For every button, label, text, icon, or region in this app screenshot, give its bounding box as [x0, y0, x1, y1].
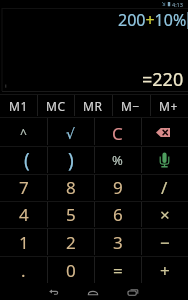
staticText: ^ — [20, 125, 27, 141]
staticText: 6 — [113, 203, 123, 226]
staticText: MC — [46, 98, 66, 114]
button[interactable]: ( — [0, 146, 47, 174]
button[interactable]: Home — [73, 284, 112, 300]
button[interactable]: % — [94, 146, 141, 174]
staticText: M− — [121, 98, 141, 114]
button[interactable]: 9 — [94, 174, 141, 201]
button[interactable]: √ — [47, 117, 94, 146]
button[interactable]: 1 — [0, 228, 47, 256]
button[interactable]: MC — [37, 94, 74, 117]
staticText: ) — [68, 147, 74, 173]
button[interactable]: × — [141, 201, 188, 228]
staticText: =220 — [142, 67, 184, 92]
staticText: 5 — [66, 203, 76, 226]
staticText: 1 — [19, 231, 29, 254]
staticText: % — [112, 151, 123, 169]
staticText: 9 — [113, 176, 123, 199]
staticText: C — [112, 122, 123, 145]
button[interactable]: 6 — [94, 201, 141, 228]
staticText: MR — [83, 98, 103, 114]
button[interactable]: 8 — [47, 174, 94, 201]
staticText: 2 — [66, 231, 76, 254]
staticText: = — [113, 259, 123, 282]
button[interactable]: MR — [74, 94, 112, 117]
button[interactable]: . — [0, 256, 47, 284]
button[interactable]: M1 — [0, 94, 37, 117]
staticText: 7 — [19, 176, 29, 199]
button[interactable]: M− — [112, 94, 150, 117]
button[interactable]: Backspace — [141, 117, 188, 146]
button[interactable]: Recent apps — [113, 284, 152, 300]
button[interactable]: ^ — [0, 117, 47, 146]
button[interactable]: 0 — [47, 256, 94, 284]
button[interactable]: 4 — [0, 201, 47, 228]
staticText: 4 — [19, 203, 29, 226]
staticText: / — [161, 176, 168, 199]
staticText: − — [160, 231, 170, 254]
button[interactable]: + — [141, 256, 188, 284]
button[interactable]: 2 — [47, 228, 94, 256]
staticText: √ — [66, 126, 75, 142]
button[interactable]: M+ — [150, 94, 188, 117]
staticText: + — [160, 259, 170, 282]
button[interactable]: C — [94, 117, 141, 146]
staticText: M1 — [9, 98, 29, 114]
staticText: 3 — [113, 231, 123, 254]
button[interactable]: 3 — [94, 228, 141, 256]
staticText: ( — [24, 147, 30, 173]
button[interactable]: − — [141, 228, 188, 256]
button[interactable]: ) — [47, 146, 94, 174]
button[interactable]: Back — [34, 284, 73, 300]
staticText: . — [21, 259, 26, 282]
staticText: 0 — [66, 259, 76, 282]
button[interactable]: 5 — [47, 201, 94, 228]
button[interactable]: Voice input — [141, 146, 188, 174]
staticText: 200+10% — [118, 9, 187, 31]
staticText: M+ — [159, 98, 179, 114]
staticText: 8 — [66, 176, 76, 199]
staticText: 4:13 — [172, 1, 183, 8]
button[interactable]: / — [141, 174, 188, 201]
button[interactable]: = — [94, 256, 141, 284]
button[interactable]: 7 — [0, 174, 47, 201]
staticText: × — [160, 203, 170, 226]
